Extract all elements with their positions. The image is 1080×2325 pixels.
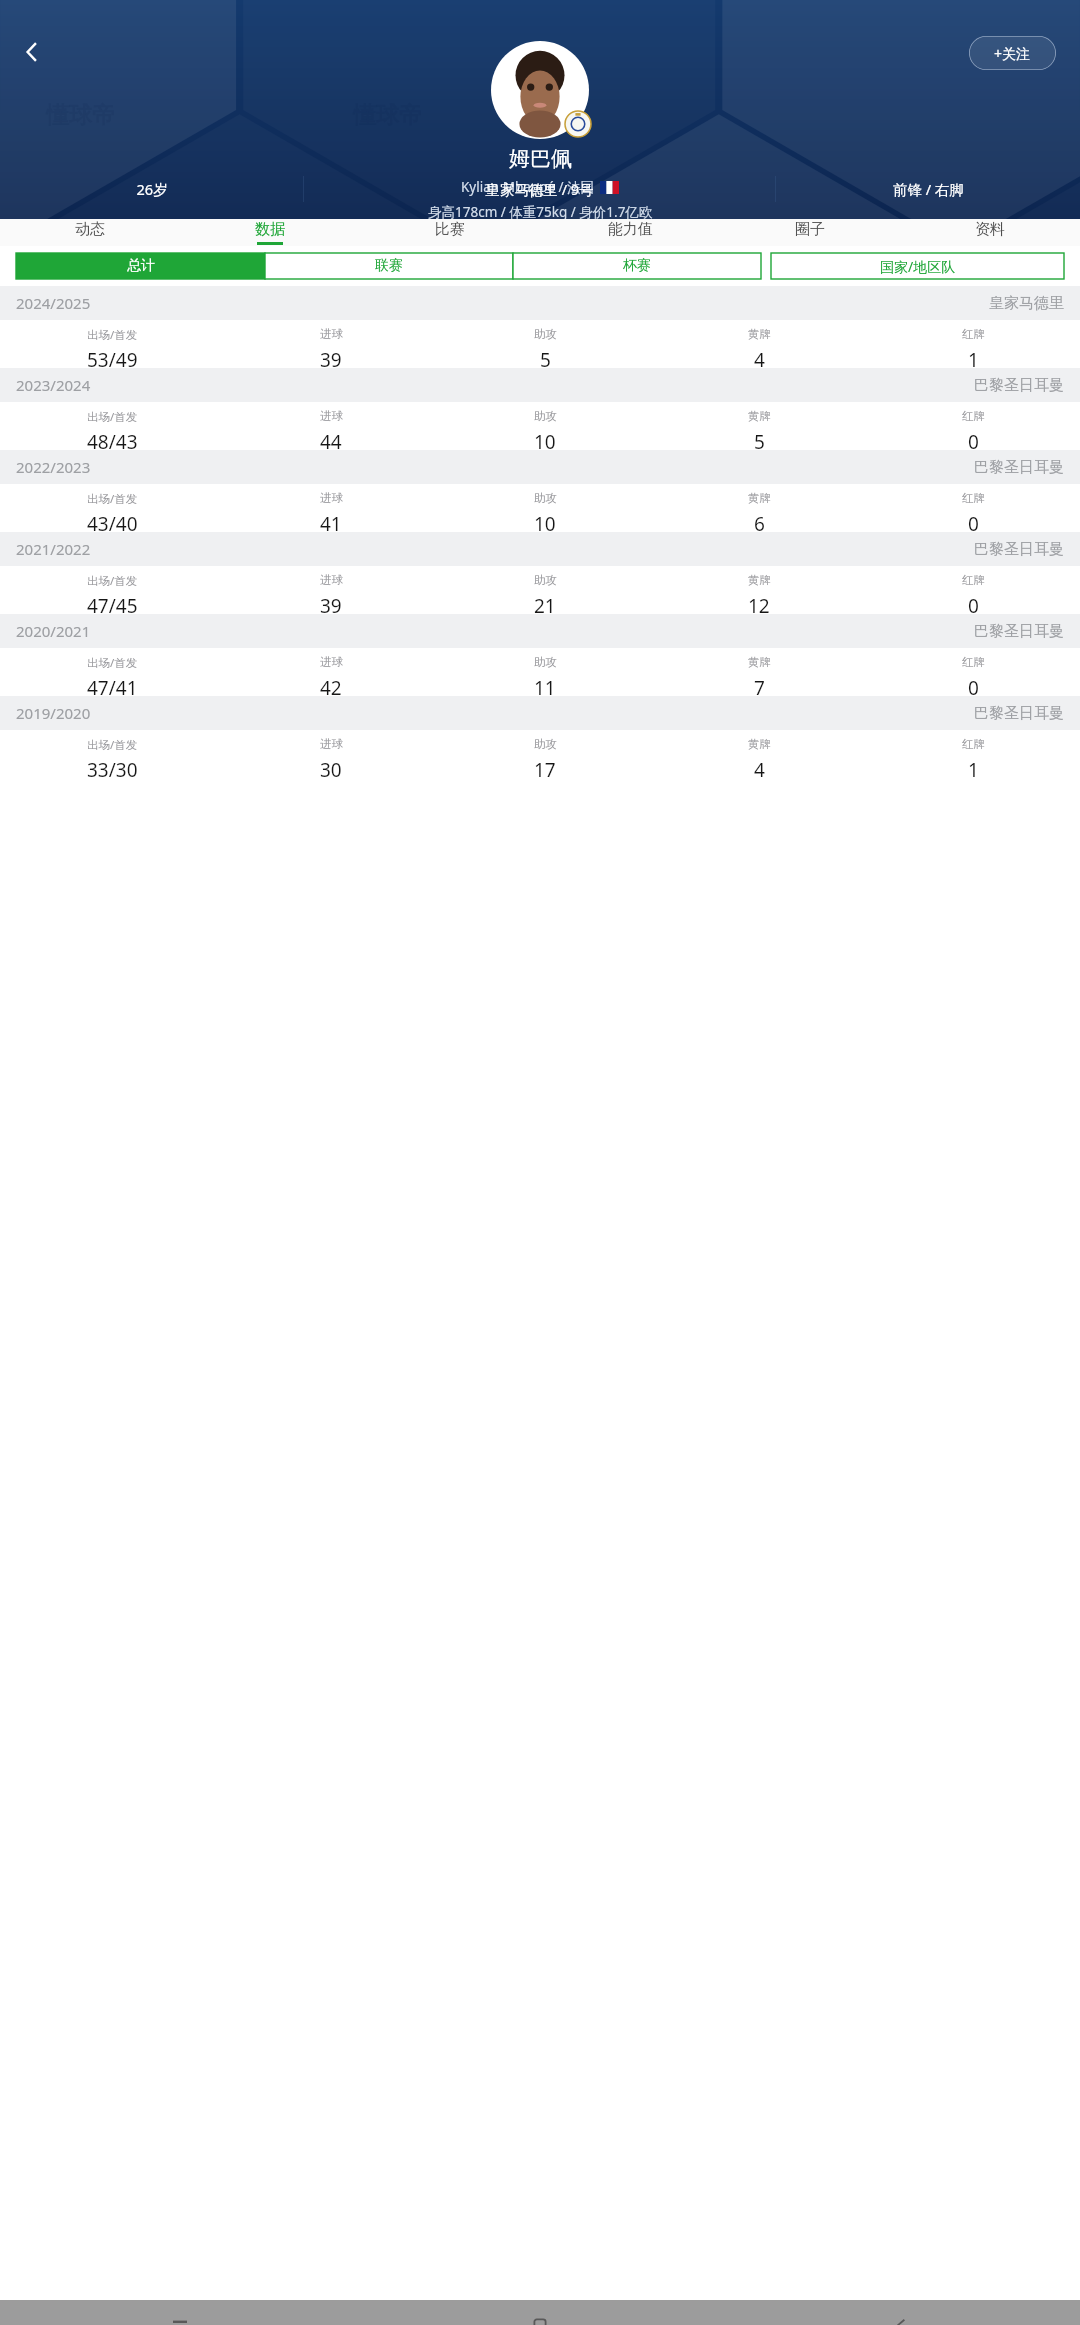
staticText: 出场/首发 bbox=[87, 573, 138, 589]
staticText: 比赛 bbox=[435, 220, 465, 239]
staticText: 黄牌 bbox=[748, 491, 771, 505]
staticText: 0 bbox=[968, 675, 979, 696]
button[interactable]: 国家/地区队 bbox=[771, 253, 1064, 279]
button[interactable]: 2024/2025 bbox=[16, 286, 1064, 320]
staticText: 1 bbox=[968, 757, 979, 778]
staticText: 21 bbox=[534, 593, 556, 614]
staticText: 0 bbox=[968, 593, 979, 614]
staticText: 联赛 bbox=[375, 257, 403, 275]
staticText: 身高178cm / 体重75kg / 身价1.7亿欧 bbox=[428, 203, 653, 221]
staticText: 巴黎圣日耳曼 bbox=[974, 540, 1064, 559]
staticText: 助攻 bbox=[534, 737, 557, 751]
staticText: 红牌 bbox=[962, 327, 985, 341]
staticText: 进球 bbox=[320, 737, 343, 751]
staticText: 42 bbox=[320, 675, 342, 696]
button[interactable]: 杯赛 bbox=[513, 253, 761, 279]
button[interactable]: 动态 bbox=[0, 219, 180, 246]
staticText: 皇家马德里 bbox=[989, 294, 1064, 313]
button[interactable]: 比赛 bbox=[360, 219, 540, 246]
staticText: 11 bbox=[534, 675, 556, 696]
button[interactable]: Home bbox=[360, 2300, 720, 2325]
staticText: 资料 bbox=[975, 220, 1005, 239]
staticText: 红牌 bbox=[962, 655, 985, 669]
staticText: 红牌 bbox=[962, 409, 985, 423]
staticText: 黄牌 bbox=[748, 737, 771, 751]
staticText: 17 bbox=[534, 757, 556, 778]
staticText: 皇家马德里 / 9号 bbox=[485, 179, 594, 199]
staticText: 4 bbox=[754, 347, 765, 368]
button[interactable]: Back bbox=[10, 30, 54, 74]
staticText: 进球 bbox=[320, 409, 343, 423]
staticText: 2024/2025 bbox=[16, 293, 91, 313]
staticText: 姆巴佩 bbox=[509, 146, 572, 172]
staticText: 杯赛 bbox=[623, 257, 651, 275]
staticText: 6 bbox=[754, 511, 765, 532]
staticText: 12 bbox=[748, 593, 770, 614]
button[interactable]: 2021/2022 bbox=[16, 532, 1064, 566]
button[interactable]: 圈子 bbox=[720, 219, 900, 246]
staticText: 4 bbox=[754, 757, 765, 778]
staticText: 黄牌 bbox=[748, 655, 771, 669]
staticText: 48/43 bbox=[87, 429, 138, 450]
staticText: 助攻 bbox=[534, 655, 557, 669]
staticText: 0 bbox=[968, 511, 979, 532]
staticText: 39 bbox=[320, 593, 342, 614]
staticText: 10 bbox=[534, 511, 556, 532]
staticText: 进球 bbox=[320, 491, 343, 505]
staticText: 出场/首发 bbox=[87, 491, 138, 507]
button[interactable]: 联赛 bbox=[265, 253, 513, 279]
staticText: 7 bbox=[754, 675, 765, 696]
staticText: 进球 bbox=[320, 655, 343, 669]
staticText: 26岁 bbox=[136, 179, 168, 199]
staticText: 巴黎圣日耳曼 bbox=[974, 458, 1064, 477]
staticText: 2022/2023 bbox=[16, 457, 91, 477]
button[interactable]: 2019/2020 bbox=[16, 696, 1064, 730]
staticText: 黄牌 bbox=[748, 327, 771, 341]
button[interactable]: +关注 bbox=[969, 36, 1056, 70]
staticText: 数据 bbox=[255, 220, 285, 239]
staticText: 动态 bbox=[75, 220, 105, 239]
staticText: 进球 bbox=[320, 327, 343, 341]
button[interactable]: 资料 bbox=[900, 219, 1080, 246]
staticText: 红牌 bbox=[962, 573, 985, 587]
staticText: 红牌 bbox=[962, 737, 985, 751]
staticText: 41 bbox=[320, 511, 342, 532]
staticText: 助攻 bbox=[534, 491, 557, 505]
staticText: 39 bbox=[320, 347, 342, 368]
staticText: 0 bbox=[968, 429, 979, 450]
staticText: 47/45 bbox=[87, 593, 138, 614]
staticText: 巴黎圣日耳曼 bbox=[974, 704, 1064, 723]
staticText: 44 bbox=[320, 429, 342, 450]
staticText: 2023/2024 bbox=[16, 375, 91, 395]
button[interactable]: 2020/2021 bbox=[16, 614, 1064, 648]
staticText: 1 bbox=[968, 347, 979, 368]
staticText: 10 bbox=[534, 429, 556, 450]
staticText: 33/30 bbox=[87, 757, 138, 778]
staticText: 30 bbox=[320, 757, 342, 778]
staticText: 5 bbox=[540, 347, 551, 368]
staticText: 53/49 bbox=[87, 347, 138, 368]
staticText: Kylian Mbappé / 法国 bbox=[461, 178, 595, 196]
staticText: 助攻 bbox=[534, 573, 557, 587]
staticText: 47/41 bbox=[87, 675, 138, 696]
button[interactable]: 2022/2023 bbox=[16, 450, 1064, 484]
staticText: 43/40 bbox=[87, 511, 138, 532]
staticText: 助攻 bbox=[534, 409, 557, 423]
button[interactable]: 数据 bbox=[180, 219, 360, 246]
button[interactable]: 能力值 bbox=[540, 219, 720, 246]
staticText: 总计 bbox=[127, 257, 155, 275]
staticText: 出场/首发 bbox=[87, 327, 138, 343]
staticText: 2019/2020 bbox=[16, 703, 91, 723]
staticText: 黄牌 bbox=[748, 573, 771, 587]
button[interactable]: Recents bbox=[0, 2300, 360, 2325]
staticText: 国家/地区队 bbox=[880, 257, 956, 276]
staticText: 2020/2021 bbox=[16, 621, 91, 641]
button[interactable]: 2023/2024 bbox=[16, 368, 1064, 402]
button[interactable]: 总计 bbox=[16, 253, 265, 279]
staticText: 出场/首发 bbox=[87, 655, 138, 671]
staticText: 能力值 bbox=[608, 220, 653, 239]
staticText: 5 bbox=[754, 429, 765, 450]
